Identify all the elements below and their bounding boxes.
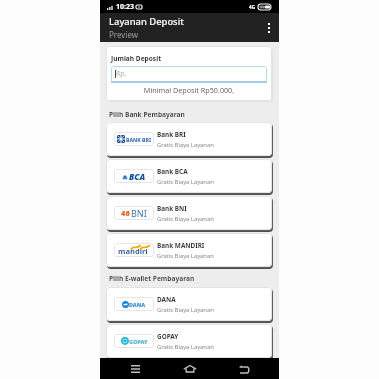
button[interactable]: 46 <box>106 196 272 230</box>
staticText: Gratis Biaya Layanan <box>157 306 214 314</box>
staticText: Jumlah Deposit <box>111 54 162 63</box>
button[interactable]: Back <box>234 358 254 379</box>
staticText: Bank BNI <box>157 204 187 213</box>
button[interactable]: Recents <box>125 358 145 379</box>
staticText: Gratis Biaya Layanan <box>157 141 214 149</box>
staticText: DANA <box>129 301 146 308</box>
staticText: BNI <box>131 207 147 219</box>
button[interactable]: DANA <box>106 287 272 321</box>
button[interactable]: GOPAY <box>106 324 272 358</box>
staticText: Gratis Biaya Layanan <box>157 343 214 351</box>
staticText: Minimal Deposit Rp50.000, <box>111 85 267 95</box>
staticText: Bank BRI <box>157 130 186 139</box>
staticText: GOPAY <box>157 332 179 341</box>
staticText: Layanan Deposit <box>109 15 184 28</box>
button[interactable]: BANK BRI <box>106 122 272 156</box>
staticText: Gratis Biaya Layanan <box>157 252 214 260</box>
staticText: mandiri <box>118 246 148 256</box>
staticText: GOPAY <box>129 338 148 345</box>
button[interactable]: Home <box>180 358 200 379</box>
staticText: 4G <box>249 4 255 10</box>
staticText: Bank MANDIRI <box>157 241 205 250</box>
staticText: Bank BCA <box>157 167 188 176</box>
staticText: BCA <box>129 171 146 182</box>
button[interactable]: Rp. <box>111 66 267 82</box>
staticText: Preview <box>109 29 139 40</box>
staticText: Pilih E-wallet Pembayaran <box>109 274 195 283</box>
staticText: DANA <box>157 295 176 304</box>
button[interactable]: mandiri <box>106 233 272 267</box>
staticText: Pilih Bank Pembayaran <box>109 110 185 119</box>
staticText: Gratis Biaya Layanan <box>157 178 214 186</box>
staticText: 10:23 <box>116 2 134 12</box>
button[interactable]: More options <box>259 18 279 38</box>
staticText: Rp. <box>116 69 127 79</box>
staticText: BANK BRI <box>126 136 151 143</box>
button[interactable]: BCA <box>106 159 272 193</box>
staticText: Gratis Biaya Layanan <box>157 215 214 223</box>
staticText: 46 <box>121 208 130 218</box>
